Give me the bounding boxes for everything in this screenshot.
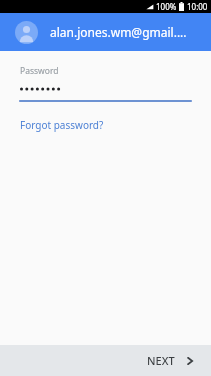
button[interactable]: Password — [0, 65, 211, 102]
button[interactable]: Forgot password? — [20, 116, 104, 134]
staticText: 100% — [156, 1, 177, 12]
button[interactable]: alan.jones.wm@gmail.... — [0, 13, 211, 51]
staticText: Forgot password? — [20, 118, 104, 132]
staticText: alan.jones.wm@gmail.... — [50, 24, 187, 40]
other: Next — [185, 356, 195, 366]
staticText: NEXT — [147, 353, 175, 368]
button[interactable]: NEXT — [122, 345, 211, 376]
staticText: Password — [20, 65, 59, 77]
staticText: 10:00 — [187, 1, 208, 12]
